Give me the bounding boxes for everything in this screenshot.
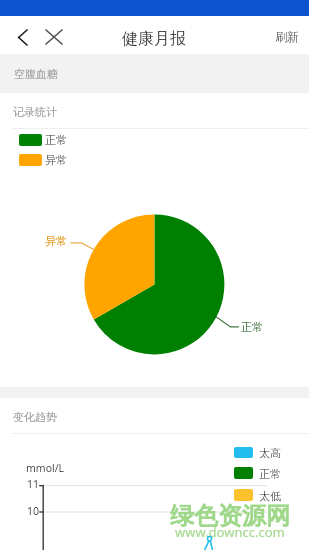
staticText: 刷新: [275, 29, 299, 44]
staticText: 异常: [45, 234, 67, 248]
staticText: 正常: [45, 133, 67, 147]
staticText: 太低: [259, 489, 281, 503]
staticText: www.downcc.com: [175, 523, 285, 541]
staticText: 正常: [241, 320, 263, 334]
staticText: 10: [27, 504, 40, 518]
staticText: 正常: [259, 467, 281, 481]
staticText: 11: [27, 477, 40, 491]
staticText: 绿色资源网: [170, 501, 290, 531]
staticText: 记录统计: [13, 105, 57, 119]
staticText: 空腹血糖: [14, 67, 58, 81]
staticText: 异常: [45, 153, 67, 167]
staticText: 健康月报: [122, 29, 186, 49]
staticText: 太高: [259, 446, 281, 460]
button[interactable]: Close: [39, 22, 69, 52]
staticText: mmol/L: [26, 461, 65, 475]
staticText: 变化趋势: [13, 410, 57, 424]
button[interactable]: Back: [8, 22, 37, 52]
button[interactable]: 刷新: [268, 24, 306, 48]
